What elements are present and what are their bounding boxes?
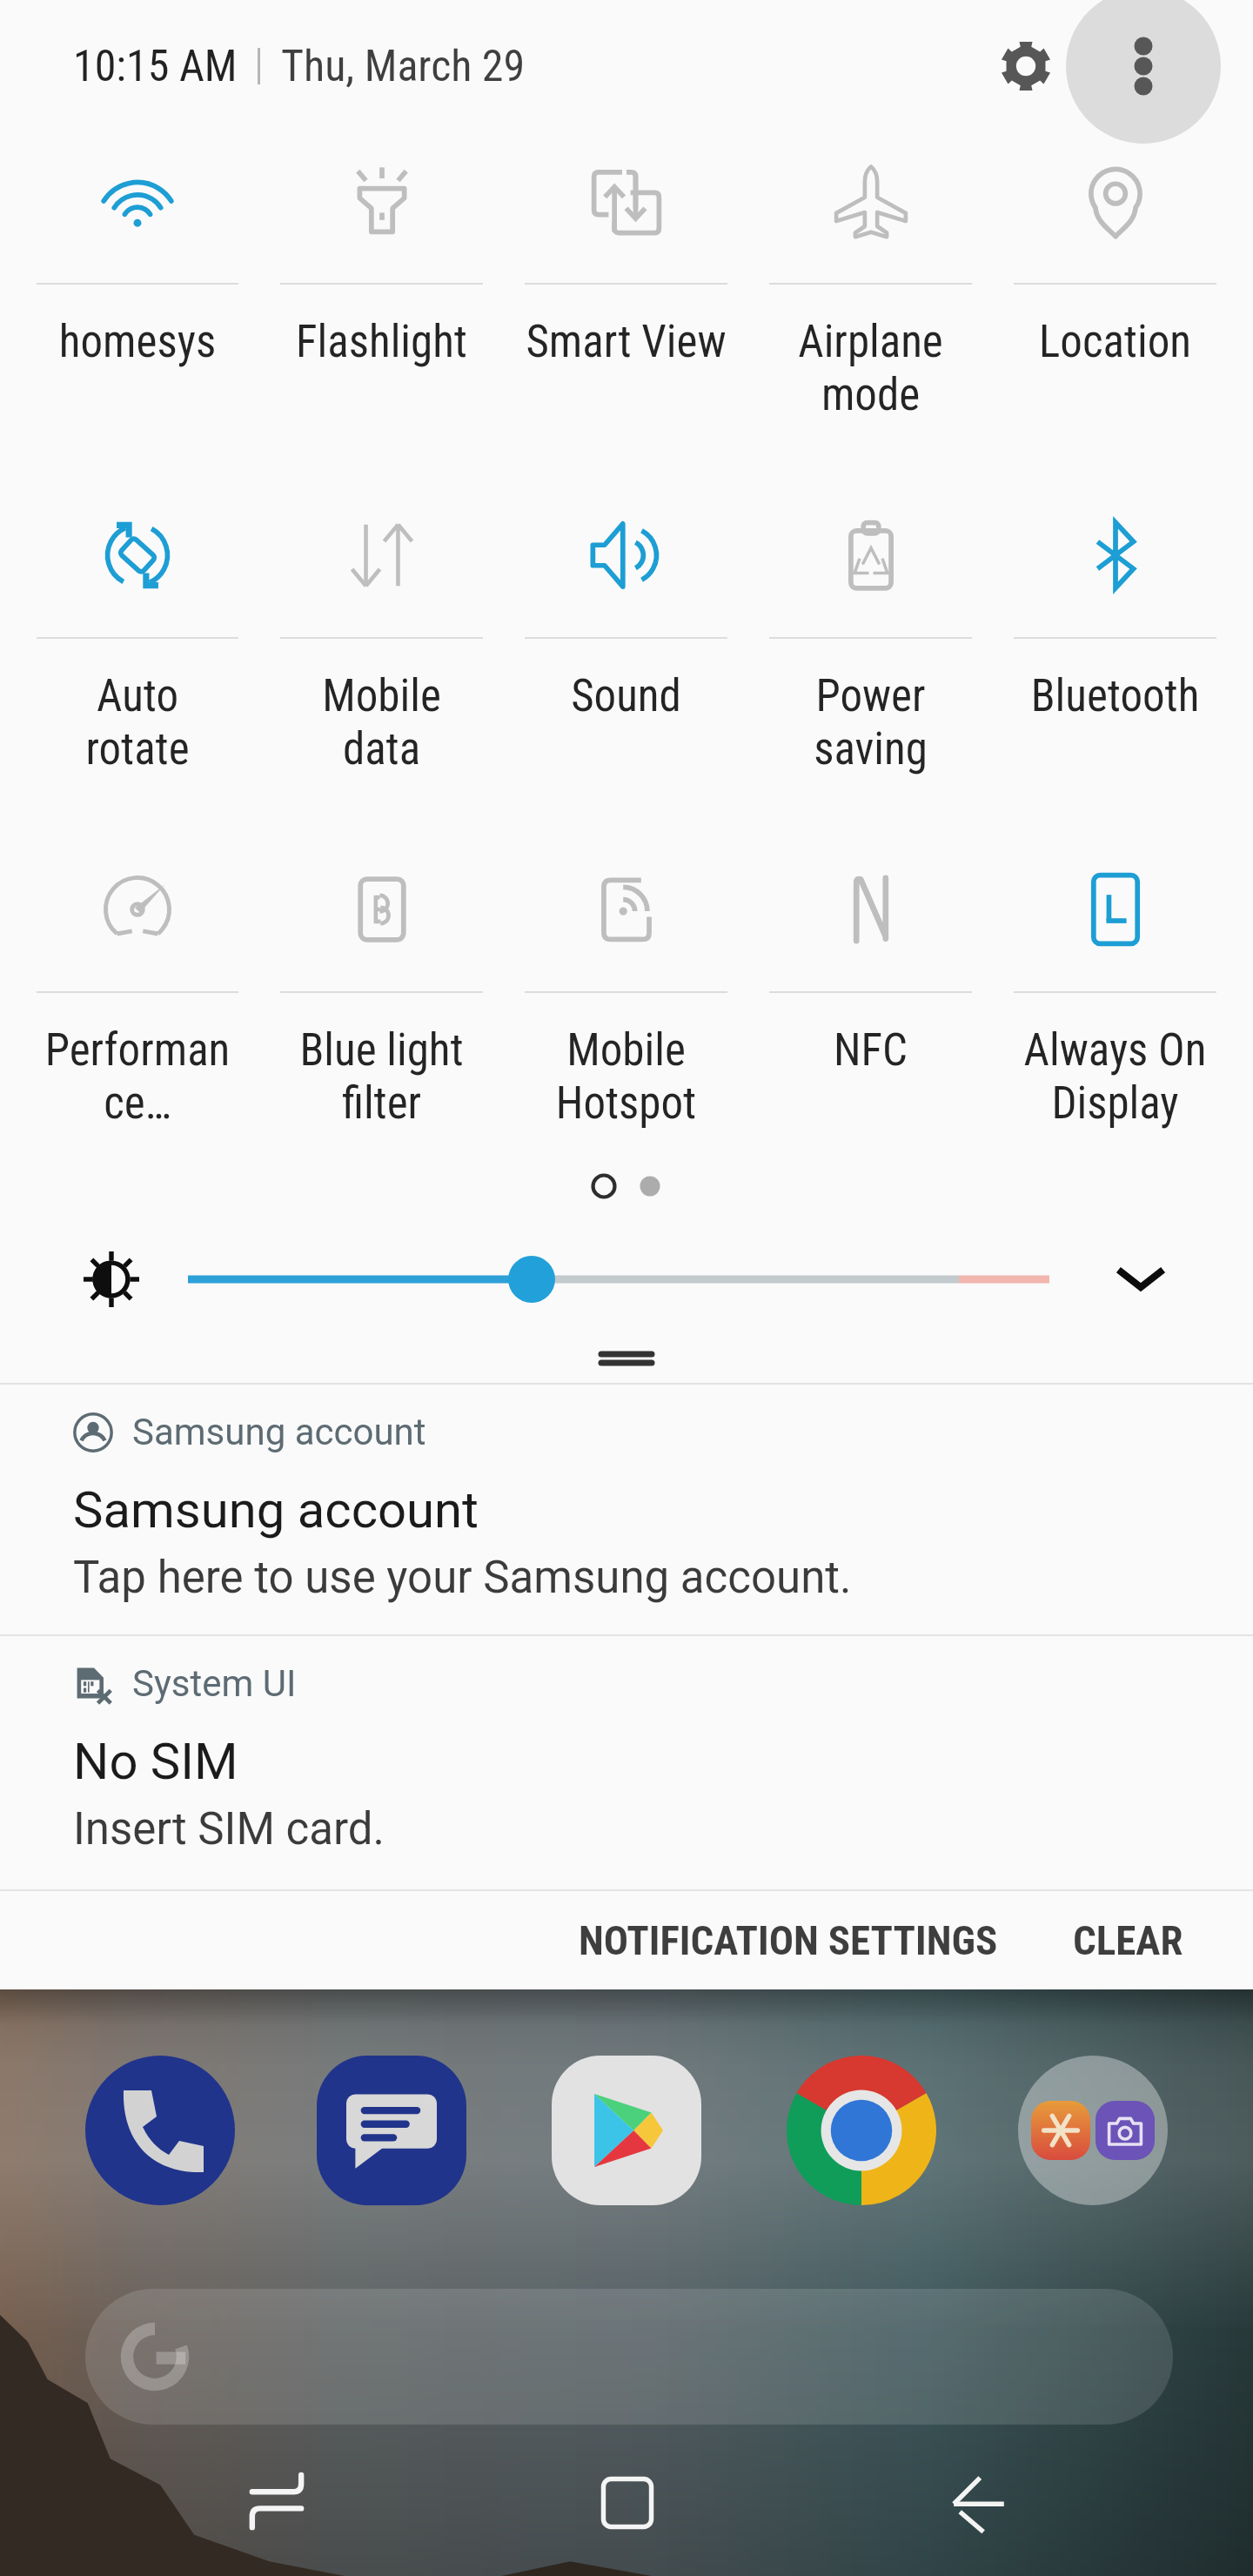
staticText: Always On Display [993,1024,1237,1130]
staticText: System UI [132,1662,297,1705]
button[interactable]: System UI [0,1636,1253,1886]
button[interactable]: Search [85,2289,1173,2425]
button[interactable]: Settings [981,21,1071,111]
button[interactable]: More options [1066,0,1221,144]
staticText: No SIM [73,1732,238,1791]
button[interactable]: Mobile Hotspot [504,841,748,1195]
staticText: Samsung account [73,1480,479,1540]
staticText: Location [993,316,1237,368]
staticText: Bluetooth [993,670,1237,722]
button[interactable]: homesys [16,132,259,486]
staticText: Performan ce… [16,1024,259,1130]
button[interactable]: Performan ce… [16,841,259,1195]
button[interactable]: Blue light filter [259,841,504,1195]
button[interactable]: Airplane mode [748,132,993,486]
staticText: Tap here to use your Samsung account. [73,1552,852,1604]
button[interactable]: Messages [317,2056,466,2205]
staticText: 10:15 AM [73,41,238,92]
button[interactable]: CLEAR [1023,1891,1232,1989]
button[interactable]: Collapse panel [0,1340,1253,1375]
staticText: Sound [504,670,748,722]
other: Expand [1106,1243,1176,1312]
staticText: Airplane mode [748,316,993,421]
button[interactable]: Flashlight [259,132,504,486]
staticText: Mobile data [259,670,504,775]
button[interactable]: Bluetooth [993,486,1237,841]
button[interactable]: Sound [504,486,748,841]
button[interactable]: Samsung account [0,1385,1253,1634]
staticText: NFC [748,1024,993,1077]
staticText: Samsung account [132,1411,426,1453]
button[interactable]: Phone [85,2056,235,2205]
button[interactable]: Home [575,2451,680,2555]
button[interactable]: Location [993,132,1237,486]
staticText: homesys [16,316,259,368]
button[interactable]: Mobile data [259,486,504,841]
button[interactable]: Auto rotate [16,486,259,841]
button[interactable]: Chrome [787,2056,936,2205]
button[interactable]: NOTIFICATION SETTINGS [553,1891,1023,1989]
staticText: Power saving [748,670,993,775]
button[interactable]: Smart View [504,132,748,486]
staticText: CLEAR [1073,1916,1183,1964]
staticText: Auto rotate [16,670,259,775]
button[interactable]: Power saving [748,486,993,841]
button[interactable]: Always On Display [993,841,1237,1195]
button[interactable]: Back [927,2451,1031,2555]
staticText: Insert SIM card. [73,1803,385,1855]
staticText: Smart View [504,316,748,368]
button[interactable]: NFC [748,841,993,1195]
staticText: NOTIFICATION SETTINGS [579,1916,998,1964]
staticText: Flashlight [259,316,504,368]
staticText: Blue light filter [259,1024,504,1130]
staticText: Thu, March 29 [281,41,526,92]
button[interactable]: Recents [224,2451,329,2555]
button[interactable]: Folder [1018,2056,1168,2205]
button[interactable]: Play Store [552,2056,701,2205]
staticText: Mobile Hotspot [504,1024,748,1130]
